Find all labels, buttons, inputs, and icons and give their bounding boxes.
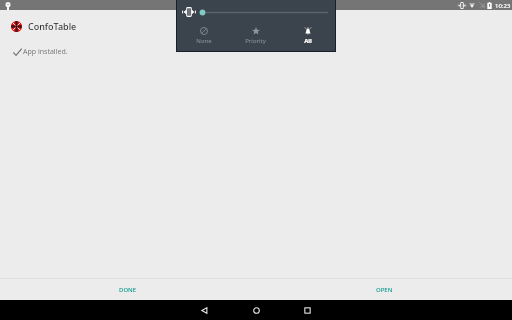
button[interactable]: Back	[194, 300, 214, 320]
staticText: DONE	[119, 286, 137, 294]
button[interactable]: None	[178, 20, 230, 46]
staticText: Priority	[245, 37, 266, 45]
staticText: None	[196, 37, 212, 45]
button[interactable]: Home	[246, 300, 266, 320]
staticText: App installed.	[23, 47, 68, 57]
button[interactable]: DONE	[105, 281, 151, 299]
button[interactable]: Priority	[229, 20, 281, 46]
button[interactable]: OPEN	[362, 281, 407, 299]
staticText: OPEN	[376, 286, 393, 294]
staticText: All	[304, 37, 312, 45]
button[interactable]: Recent apps	[297, 300, 317, 320]
button[interactable]: All	[282, 20, 334, 46]
staticText: 10:23	[495, 2, 511, 10]
staticText: ConfoTable	[28, 20, 77, 32]
